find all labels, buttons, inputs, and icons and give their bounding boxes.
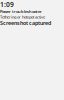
staticText: Power troubleshooter bbox=[0, 9, 42, 14]
staticText: Tethering or hotspot active bbox=[0, 14, 45, 19]
staticText: 1:09 bbox=[0, 0, 14, 9]
staticText: Screenshot captured bbox=[0, 19, 51, 27]
